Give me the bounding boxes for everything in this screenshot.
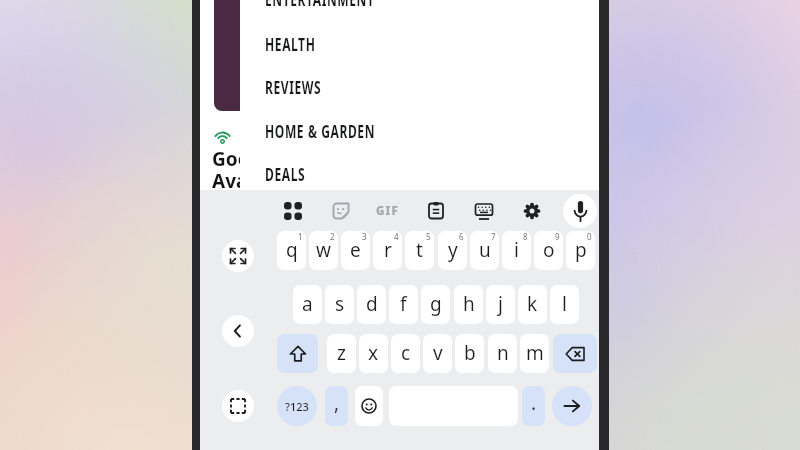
button[interactable]: l — [550, 285, 579, 324]
staticText: r — [384, 237, 392, 263]
button[interactable] — [470, 197, 498, 225]
staticText: g — [430, 291, 442, 317]
staticText: n — [497, 340, 509, 366]
button[interactable]: HOME & GARDEN — [250, 120, 580, 140]
staticText: 3 — [362, 231, 367, 242]
button[interactable]: y — [438, 231, 467, 270]
staticText: b — [464, 340, 476, 366]
button[interactable]: f — [389, 285, 418, 324]
button[interactable]: s — [325, 285, 354, 324]
staticText: p — [575, 237, 587, 263]
button[interactable]: v — [423, 334, 452, 373]
button[interactable] — [327, 197, 355, 225]
staticText: 8 — [523, 231, 528, 242]
button[interactable]: REVIEWS — [250, 76, 580, 96]
staticText: s — [335, 291, 345, 317]
staticText: f — [400, 291, 407, 317]
button[interactable] — [279, 197, 307, 225]
button[interactable]: q — [277, 231, 306, 270]
button[interactable]: k — [518, 285, 547, 324]
button[interactable]: b — [455, 334, 484, 373]
staticText: o — [543, 237, 555, 263]
staticText: q — [286, 237, 298, 263]
button[interactable]: GIF — [372, 202, 404, 220]
staticText: k — [527, 291, 538, 317]
staticText: HOME & GARDEN — [265, 120, 376, 140]
button[interactable]: d — [357, 285, 386, 324]
button[interactable] — [355, 386, 383, 426]
button[interactable] — [422, 197, 450, 225]
button[interactable]: ?123 — [277, 386, 317, 426]
button[interactable]: o — [534, 231, 563, 270]
staticText: 6 — [459, 231, 464, 242]
staticText: 2 — [330, 231, 335, 242]
button[interactable]: z — [327, 334, 356, 373]
button[interactable]: t — [405, 231, 434, 270]
button[interactable]: x — [359, 334, 388, 373]
staticText: c — [401, 340, 411, 366]
button[interactable] — [277, 334, 318, 373]
staticText: h — [463, 291, 475, 317]
button[interactable] — [518, 197, 546, 225]
staticText: m — [526, 340, 544, 366]
button[interactable]: i — [502, 231, 531, 270]
staticText: i — [514, 237, 519, 263]
button[interactable] — [563, 194, 597, 228]
button[interactable]: ENTERTAINMENT — [250, 0, 580, 8]
staticText: HEALTH — [265, 33, 316, 53]
staticText: l — [562, 291, 567, 317]
staticText: j — [498, 291, 503, 317]
staticText: 1 — [298, 231, 303, 242]
staticText: w — [316, 237, 331, 263]
button[interactable]: a — [293, 285, 322, 324]
button[interactable]: u — [470, 231, 499, 270]
staticText: 7 — [491, 231, 496, 242]
button[interactable]: m — [520, 334, 549, 373]
staticText: . — [531, 390, 537, 416]
button[interactable]: , — [325, 386, 348, 426]
staticText: 0 — [587, 231, 592, 242]
staticText: 5 — [426, 231, 431, 242]
button[interactable] — [222, 315, 254, 347]
button[interactable] — [222, 390, 254, 422]
button[interactable]: . — [522, 386, 545, 426]
staticText: v — [433, 340, 443, 366]
button[interactable]: DEALS — [250, 163, 580, 183]
staticText: z — [337, 340, 346, 366]
button[interactable] — [552, 386, 592, 426]
staticText: a — [302, 291, 313, 317]
staticText: REVIEWS — [265, 76, 322, 96]
button[interactable] — [222, 240, 254, 272]
button[interactable]: c — [391, 334, 420, 373]
button[interactable] — [553, 334, 597, 373]
staticText: y — [448, 237, 458, 263]
staticText: t — [416, 237, 423, 263]
button[interactable]: h — [454, 285, 483, 324]
button[interactable]: HEALTH — [250, 33, 580, 53]
button[interactable]: j — [486, 285, 515, 324]
staticText: x — [368, 340, 379, 366]
staticText: ENTERTAINMENT — [265, 0, 375, 8]
button[interactable]: n — [488, 334, 517, 373]
staticText: Avail — [212, 168, 259, 194]
staticText: d — [366, 291, 378, 317]
staticText: 4 — [394, 231, 399, 242]
staticText: , — [334, 390, 340, 416]
staticText: u — [479, 237, 491, 263]
button[interactable]: g — [421, 285, 450, 324]
button[interactable]: p — [566, 231, 595, 270]
button[interactable]: e — [341, 231, 370, 270]
staticText: DEALS — [265, 163, 305, 183]
button[interactable]: r — [373, 231, 402, 270]
button[interactable]: w — [309, 231, 338, 270]
staticText: Good — [212, 146, 262, 172]
staticText: ?123 — [285, 399, 309, 414]
staticText: GIF — [376, 203, 400, 219]
staticText: 9 — [555, 231, 560, 242]
staticText: e — [350, 237, 361, 263]
